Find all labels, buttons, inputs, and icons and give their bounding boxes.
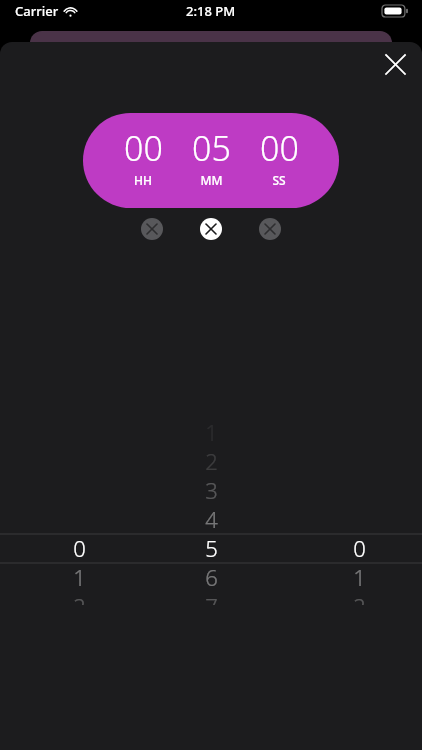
button[interactable]: 1 [34, 562, 124, 591]
staticText: 1 [205, 417, 218, 446]
staticText: 2:18 PM [186, 2, 236, 20]
staticText: 00 [124, 125, 163, 171]
staticText: SS [272, 172, 286, 188]
button[interactable]: 2 [166, 446, 256, 475]
staticText: Carrier [15, 2, 59, 20]
staticText: 1 [73, 562, 86, 591]
staticText: 0 [353, 533, 366, 562]
button[interactable]: Reset minutes [200, 218, 222, 240]
staticText: 2 [353, 591, 366, 605]
button[interactable]: 3 [166, 475, 256, 504]
staticText: 1 [353, 562, 366, 591]
staticText: HH [134, 172, 152, 188]
staticText: 2 [205, 446, 218, 475]
staticText: 3 [205, 475, 218, 504]
staticText: 4 [205, 504, 218, 533]
staticText: 05 [192, 125, 231, 171]
staticText: 2 [73, 591, 86, 605]
button[interactable]: 2 [314, 591, 404, 605]
button[interactable]: 5 [166, 533, 256, 562]
staticText: 5 [205, 533, 218, 562]
button[interactable]: 1 [314, 562, 404, 591]
staticText: 6 [205, 562, 218, 591]
button[interactable]: 0 [314, 533, 404, 562]
button[interactable]: 6 [166, 562, 256, 591]
button[interactable]: 2 [34, 591, 124, 605]
staticText: 0 [73, 533, 86, 562]
button[interactable]: 7 [166, 591, 256, 605]
button[interactable]: 4 [166, 504, 256, 533]
staticText: 00 [260, 125, 299, 171]
button[interactable]: 00 [83, 113, 339, 208]
staticText: MM [200, 172, 223, 188]
button[interactable]: Reset seconds [259, 218, 281, 240]
button[interactable]: Close [377, 46, 413, 82]
button[interactable]: Reset hours [141, 218, 163, 240]
staticText: 7 [205, 591, 218, 605]
button[interactable]: 0 [34, 533, 124, 562]
